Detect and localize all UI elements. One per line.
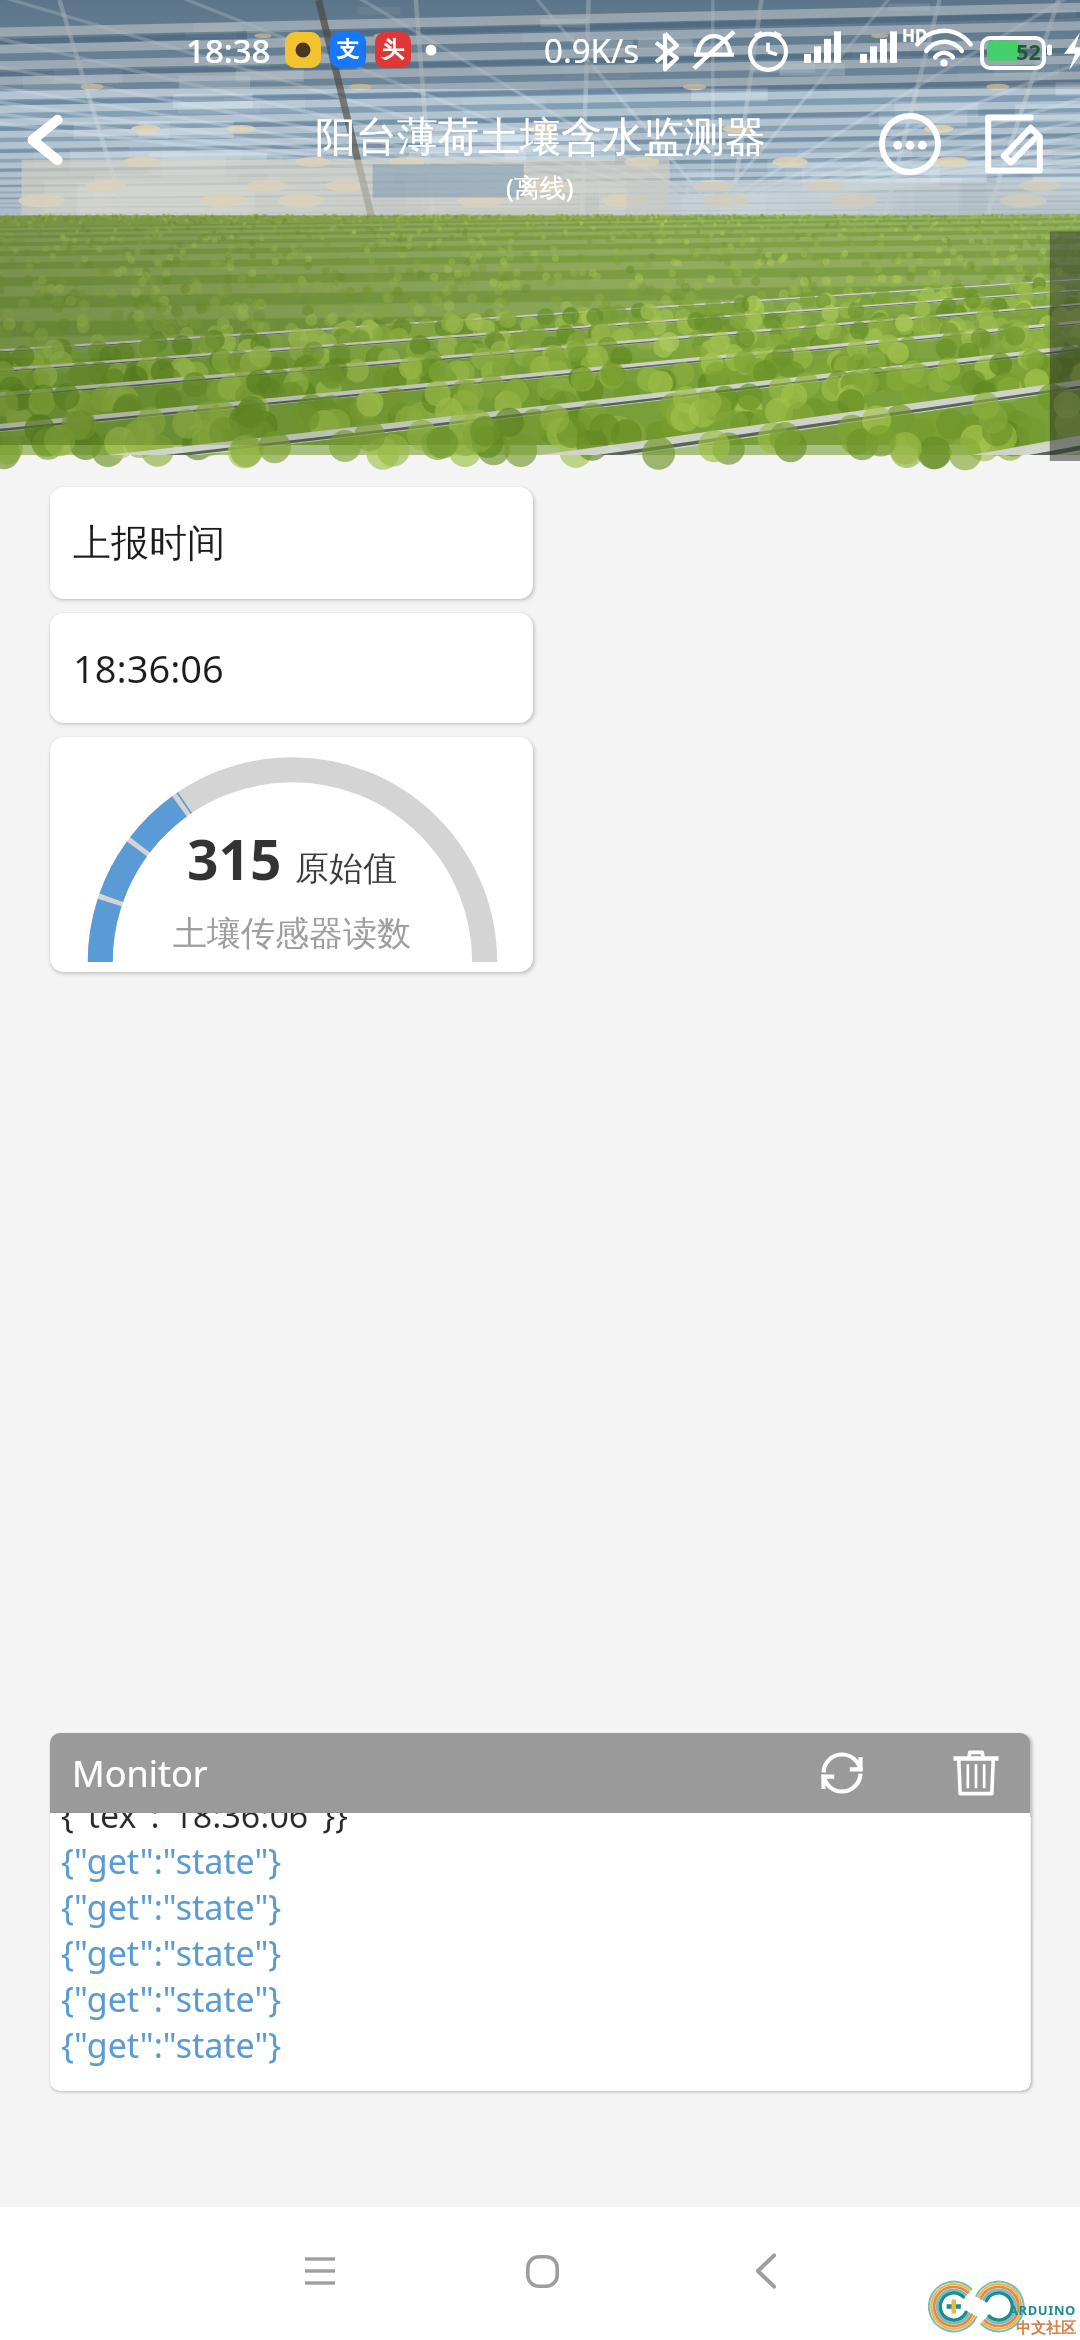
button[interactable]: Recent apps [276, 2227, 364, 2315]
staticText: 315 [187, 821, 282, 896]
staticText: 支 [337, 36, 359, 64]
button[interactable]: 315 [50, 737, 533, 972]
staticText: {"tex":"18:36:06"}} [61, 1813, 349, 1838]
button[interactable]: 上报时间 [50, 487, 533, 599]
staticText: {"get":"state"} [61, 1884, 282, 1930]
staticText: 中文社区 [1016, 2319, 1076, 2338]
staticText: ARDUINO [1009, 2301, 1076, 2319]
staticText: 阳台薄荷土壤含水监测器 [315, 112, 766, 164]
button[interactable]: Clear [940, 1737, 1012, 1809]
staticText: 0.9K/s [544, 28, 640, 73]
staticText: 18:36:06 [73, 642, 224, 694]
staticText: 上报时间 [73, 519, 225, 567]
staticText: 土壤传感器读数 [173, 912, 411, 955]
button[interactable]: Back [8, 102, 84, 178]
button[interactable]: Back [722, 2227, 810, 2315]
staticText: {"get":"state"} [61, 1838, 282, 1884]
staticText: (离线) [506, 169, 574, 205]
staticText: 头 [382, 36, 404, 64]
staticText: 原始值 [295, 847, 397, 890]
button[interactable]: 18:36:06 [50, 613, 533, 723]
button[interactable]: Home [498, 2227, 586, 2315]
button[interactable]: Edit [974, 104, 1054, 184]
staticText: Monitor [72, 1749, 208, 1798]
button[interactable]: More options [870, 104, 950, 184]
staticText: {"get":"state"} [61, 1930, 282, 1976]
staticText: {"get":"state"} [61, 1976, 282, 2022]
staticText: 18:38 [186, 28, 271, 73]
staticText: HD [902, 24, 928, 47]
staticText: 52 [1016, 36, 1042, 66]
button[interactable]: Refresh [806, 1737, 878, 1809]
staticText: {"get":"state"} [61, 2022, 282, 2068]
